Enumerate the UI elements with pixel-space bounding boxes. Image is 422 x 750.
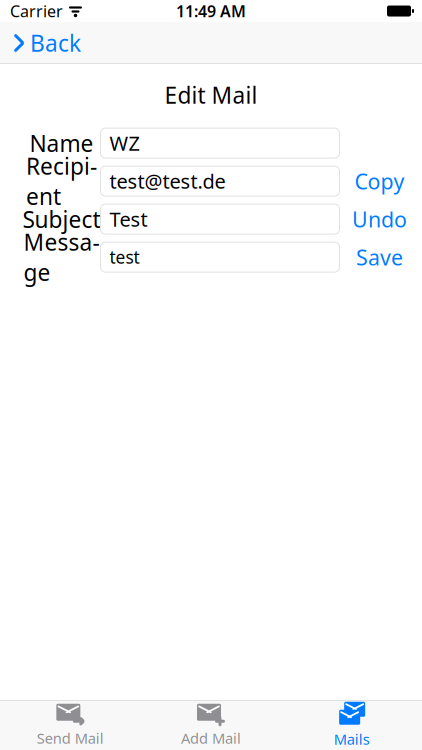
staticText: test@test.de: [109, 168, 225, 194]
button[interactable]: Add Mail: [141, 700, 281, 749]
button[interactable]: Copy: [339, 166, 419, 196]
staticText: test: [109, 246, 139, 269]
staticText: Name: [29, 128, 93, 158]
button[interactable]: Back: [0, 22, 81, 64]
staticText: Carrier: [10, 0, 63, 22]
staticText: Recipient: [26, 151, 97, 211]
button[interactable]: Mails: [281, 700, 422, 749]
button[interactable]: Undo: [339, 204, 419, 234]
staticText: Copy: [354, 167, 404, 195]
staticText: Send Mail: [37, 728, 104, 748]
staticText: Subject: [22, 204, 100, 234]
button[interactable]: Send Mail: [0, 700, 141, 749]
staticText: Edit Mail: [164, 80, 257, 110]
staticText: Undo: [352, 205, 407, 233]
staticText: Add Mail: [181, 728, 241, 748]
staticText: Back: [30, 28, 81, 58]
button[interactable]: Save: [339, 242, 419, 272]
staticText: Mails: [334, 729, 370, 749]
staticText: Test: [109, 206, 147, 232]
staticText: 11:49 AM: [176, 0, 246, 22]
staticText: Save: [356, 243, 403, 271]
staticText: WZ: [109, 130, 139, 156]
staticText: Message: [23, 227, 99, 287]
